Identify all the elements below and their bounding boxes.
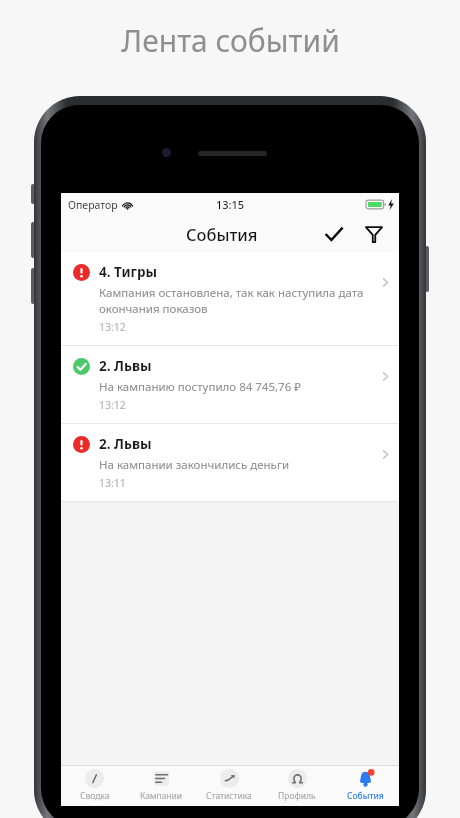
button[interactable]: 2. Львы [61,346,399,423]
staticText: Кампании [140,790,183,802]
staticText: 13:12 [99,320,126,334]
staticText: 13:11 [99,476,126,490]
staticText: 13:12 [99,398,126,412]
button[interactable]: 2. Львы [61,424,399,501]
button[interactable]: События [331,766,399,806]
staticText: События [347,790,384,802]
staticText: Оператор [68,198,118,212]
staticText: События [186,223,258,245]
button[interactable]: Сводка [61,766,128,806]
staticText: Кампания остановлена, так как наступила … [99,285,364,317]
staticText: 13:15 [216,197,245,212]
staticText: Статистика [206,790,252,802]
button[interactable]: Кампании [128,766,195,806]
staticText: 2. Львы [99,357,152,375]
staticText: Сводка [80,790,110,802]
button[interactable]: Статистика [195,766,263,806]
staticText: Профиль [278,790,316,802]
button[interactable]: Filter [357,217,391,251]
staticText: На кампании закончились деньги [99,457,290,473]
button[interactable]: 4. Тигры [61,252,399,345]
staticText: На кампанию поступило 84 745,76 ₽ [99,379,301,395]
button[interactable]: Mark all as read [317,217,351,251]
staticText: 4. Тигры [99,263,158,281]
staticText: 2. Львы [99,435,152,453]
staticText: Лента событий [121,20,340,61]
button[interactable]: Профиль [263,766,331,806]
